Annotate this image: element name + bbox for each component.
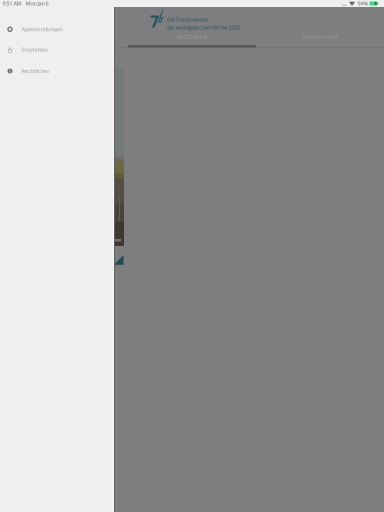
staticText: Rechtliches: [21, 67, 49, 75]
staticText: Empfehlen: [21, 46, 47, 53]
staticText: 94%: [357, 0, 367, 7]
staticText: 7: [150, 11, 159, 32]
button[interactable]: Empfehlen: [0, 43, 113, 57]
button[interactable]: AUSGABEN: [128, 28, 256, 45]
staticText: Mon Jan 6: [25, 0, 48, 7]
staticText: AUSGABEN: [177, 33, 207, 41]
staticText: Die Fastenaktion: [167, 16, 208, 23]
staticText: 9:51 AM: [2, 0, 21, 7]
button[interactable]: Rechtliches: [0, 64, 113, 78]
staticText: DOWNLOADS: [302, 33, 338, 41]
staticText: Appeinstellungen: [21, 26, 62, 33]
button[interactable]: Appeinstellungen: [0, 22, 113, 36]
staticText: der evangelischen Kirche 2020: [167, 24, 240, 31]
